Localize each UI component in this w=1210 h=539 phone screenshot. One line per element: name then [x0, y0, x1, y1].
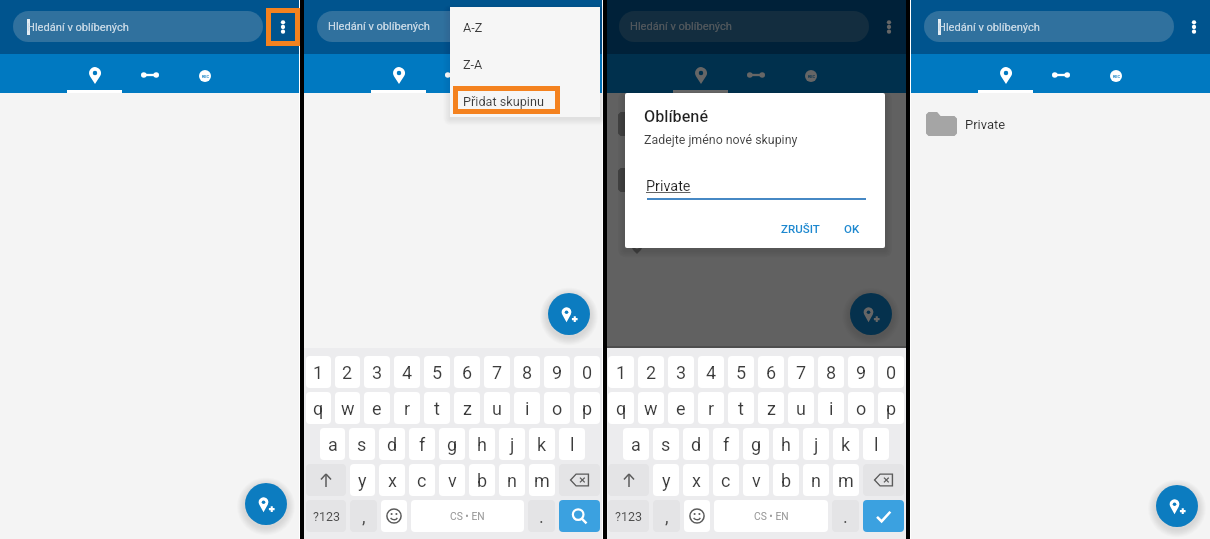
button[interactable]: 6 — [454, 356, 480, 388]
button[interactable]: o — [848, 392, 874, 424]
button[interactable]: Add favourite place — [245, 483, 287, 525]
button[interactable]: ZRUŠIT — [773, 218, 828, 239]
button[interactable]: y — [350, 464, 375, 496]
button[interactable]: CS • EN — [714, 500, 828, 532]
button[interactable]: p — [574, 392, 600, 424]
button[interactable]: . — [528, 500, 555, 532]
button[interactable]: e — [668, 392, 694, 424]
button[interactable]: h — [469, 428, 495, 460]
button[interactable]: Places — [371, 54, 426, 93]
button[interactable]: u — [788, 392, 814, 424]
button[interactable]: x — [379, 464, 405, 496]
button[interactable]: 5 — [728, 356, 754, 388]
button[interactable]: p — [878, 392, 904, 424]
button[interactable]: 2 — [638, 356, 664, 388]
button[interactable]: Routes — [1033, 54, 1088, 93]
button[interactable]: d — [379, 428, 405, 460]
button[interactable]: Oblíbené — [606, 103, 906, 145]
button[interactable]: d — [683, 428, 709, 460]
button[interactable]: m — [529, 464, 555, 496]
button[interactable] — [559, 500, 600, 532]
button[interactable]: z — [454, 392, 480, 424]
button[interactable]: n — [803, 464, 829, 496]
button[interactable]: ?123 — [608, 500, 649, 532]
button[interactable]: g — [439, 428, 465, 460]
button[interactable]: q — [306, 392, 331, 424]
button[interactable]: 3 — [364, 356, 390, 388]
button[interactable]: v — [743, 464, 769, 496]
button[interactable]: r — [394, 392, 420, 424]
button[interactable]: Places — [67, 54, 122, 93]
button[interactable]: Recordings — [783, 54, 838, 93]
button[interactable]: Hledání v oblíbených — [13, 11, 263, 42]
button[interactable]: 7 — [788, 356, 814, 388]
button[interactable]: f — [713, 428, 739, 460]
button[interactable]: A-Z — [450, 9, 600, 46]
button[interactable]: Private — [911, 103, 1210, 145]
button[interactable]: w — [335, 392, 360, 424]
button[interactable]: More options — [267, 0, 299, 54]
button[interactable]: 9 — [544, 356, 570, 388]
button[interactable]: a — [623, 428, 649, 460]
button[interactable]: 0 — [878, 356, 904, 388]
button[interactable]: Routes — [728, 54, 783, 93]
button[interactable]: 6 — [758, 356, 784, 388]
button[interactable]: 0 — [574, 356, 600, 388]
button[interactable] — [381, 500, 407, 532]
button[interactable]: w — [638, 392, 664, 424]
button[interactable]: CS • EN — [411, 500, 524, 532]
button[interactable]: Trasy — [606, 159, 906, 201]
button[interactable]: h — [773, 428, 799, 460]
button[interactable]: Add favourite place — [548, 293, 590, 335]
button[interactable]: 3 — [668, 356, 694, 388]
button[interactable]: Add favourite place — [850, 293, 892, 335]
button[interactable]: m — [833, 464, 859, 496]
button[interactable]: 7 — [484, 356, 510, 388]
button[interactable]: c — [713, 464, 739, 496]
button[interactable]: v — [439, 464, 465, 496]
button[interactable]: OK — [836, 218, 868, 239]
button[interactable] — [559, 464, 600, 496]
button[interactable]: Recordings — [177, 54, 232, 93]
button[interactable]: n — [499, 464, 525, 496]
button[interactable]: 8 — [818, 356, 844, 388]
button[interactable]: k — [529, 428, 555, 460]
button[interactable] — [863, 500, 904, 532]
button[interactable]: Recordings — [481, 54, 536, 93]
button[interactable]: 4 — [698, 356, 724, 388]
button[interactable]: b — [469, 464, 495, 496]
button[interactable]: Hledání v oblíbených — [924, 11, 1174, 42]
button[interactable]: Přidat skupinu — [450, 83, 600, 119]
button[interactable]: Hledání v oblíbených — [317, 11, 567, 42]
button[interactable]: s — [653, 428, 679, 460]
button[interactable]: Z-A — [450, 46, 600, 83]
button[interactable]: Hledání v oblíbených — [619, 11, 869, 42]
button[interactable]: c — [409, 464, 435, 496]
button[interactable]: 8 — [514, 356, 540, 388]
button[interactable]: r — [698, 392, 724, 424]
button[interactable]: q — [608, 392, 634, 424]
button[interactable]: g — [743, 428, 769, 460]
button[interactable] — [863, 464, 904, 496]
button[interactable]: y — [653, 464, 679, 496]
button[interactable]: b — [773, 464, 799, 496]
button[interactable]: , — [350, 500, 377, 532]
button[interactable]: e — [364, 392, 390, 424]
button[interactable]: 1 — [608, 356, 634, 388]
button[interactable]: s — [349, 428, 375, 460]
button[interactable]: Add favourite place — [1156, 485, 1198, 527]
button[interactable]: 4 — [394, 356, 420, 388]
button[interactable]: Recordings — [1088, 54, 1143, 93]
button[interactable]: z — [758, 392, 784, 424]
button[interactable]: Places — [673, 54, 728, 93]
button[interactable] — [608, 464, 649, 496]
button[interactable]: k — [833, 428, 859, 460]
button[interactable]: i — [818, 392, 844, 424]
button[interactable]: Places — [978, 54, 1033, 93]
button[interactable]: 5 — [424, 356, 450, 388]
button[interactable]: t — [424, 392, 450, 424]
button[interactable]: Routes — [426, 54, 481, 93]
button[interactable]: j — [803, 428, 829, 460]
button[interactable] — [306, 464, 346, 496]
button[interactable]: j — [499, 428, 525, 460]
